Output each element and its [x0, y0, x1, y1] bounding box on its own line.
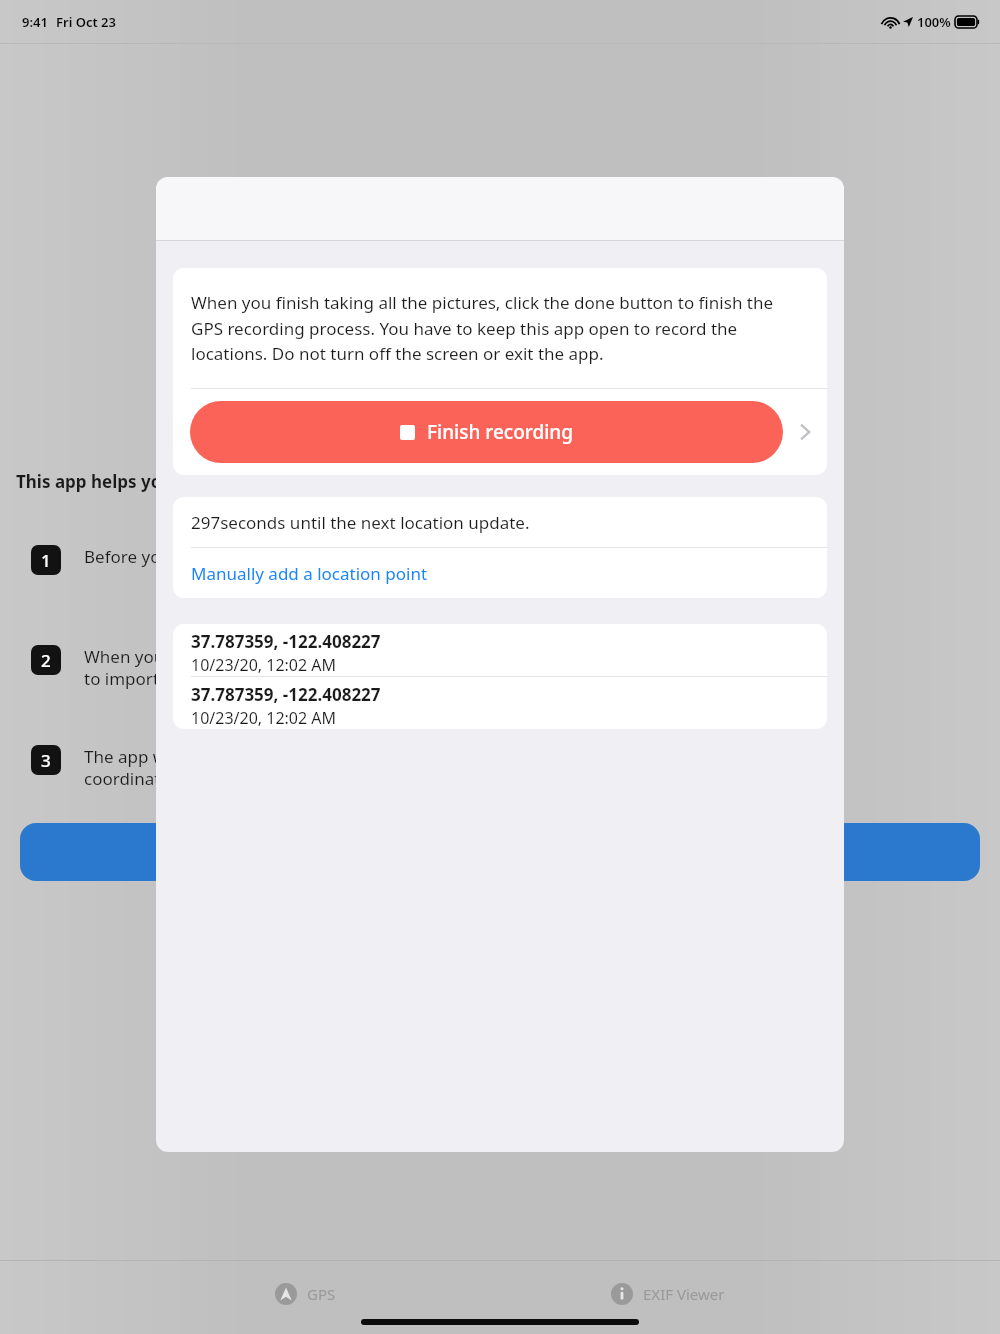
staticText: 297seconds until the next location updat… [191, 511, 530, 534]
staticText: 10/23/20, 12:02 AM [191, 707, 337, 729]
staticText: The app will match the pictures with the… [84, 745, 653, 790]
staticText: 100% [917, 13, 951, 31]
staticText: Manually add a location point [191, 562, 428, 585]
button[interactable]: Manually add a location point [173, 548, 827, 598]
staticText: GPS [307, 1284, 336, 1304]
button[interactable]: GPS [275, 1283, 336, 1305]
staticText: 1 [41, 549, 51, 572]
button[interactable]: EXIF Viewer [611, 1283, 725, 1305]
staticText: Before you take pictures, start the GPS … [84, 545, 529, 568]
staticText: Fri Oct 23 [56, 13, 116, 31]
staticText: 9:41 [22, 13, 48, 31]
button[interactable]: 37.787359, -122.408227 [173, 624, 827, 676]
staticText: Finish recording [427, 419, 574, 445]
button[interactable]: Finish recording [173, 389, 827, 475]
staticText: EXIF Viewer [643, 1284, 725, 1304]
button[interactable]: 37.787359, -122.408227 [173, 677, 827, 729]
staticText: When you finish taking all the pictures,… [191, 291, 809, 365]
staticText: 2 [41, 649, 51, 672]
staticText: 37.787359, -122.408227 [191, 630, 381, 653]
staticText: 10/23/20, 12:02 AM [191, 654, 337, 676]
staticText: This app helps you geotag your pictures [16, 470, 354, 493]
button[interactable] [20, 823, 980, 881]
staticText: When you are done taking pictures, finis… [84, 645, 713, 690]
staticText: 3 [41, 749, 51, 772]
staticText: 37.787359, -122.408227 [191, 683, 381, 706]
